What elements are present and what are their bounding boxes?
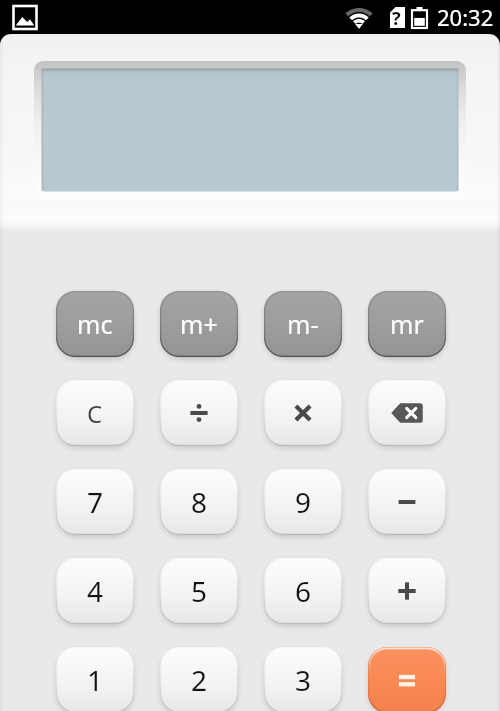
staticText: mr — [390, 307, 424, 341]
button[interactable]: Equals — [368, 647, 446, 711]
staticText: mc — [77, 307, 113, 341]
button[interactable]: 9 — [264, 469, 342, 535]
button[interactable]: Backspace — [368, 380, 446, 446]
button[interactable]: m- — [264, 291, 342, 357]
button[interactable]: 4 — [56, 558, 134, 624]
button[interactable]: Plus — [368, 558, 446, 624]
button[interactable]: C — [56, 380, 134, 446]
button[interactable]: Minus — [368, 469, 446, 535]
staticText: 8 — [191, 483, 208, 521]
staticText: 4 — [87, 572, 104, 610]
staticText: ? — [392, 6, 401, 31]
staticText: 1 — [87, 661, 104, 699]
button[interactable]: 8 — [160, 469, 238, 535]
staticText: 6 — [295, 572, 312, 610]
button[interactable]: 5 — [160, 558, 238, 624]
button[interactable]: mr — [368, 291, 446, 357]
button[interactable]: 3 — [264, 647, 342, 711]
button[interactable]: Multiply — [264, 380, 342, 446]
staticText: 3 — [295, 661, 312, 699]
staticText: m- — [287, 307, 319, 341]
button[interactable]: 2 — [160, 647, 238, 711]
button[interactable]: 7 — [56, 469, 134, 535]
staticText: 7 — [87, 483, 104, 521]
staticText: 20:32 — [437, 2, 494, 32]
button[interactable]: mc — [56, 291, 134, 357]
staticText: 2 — [191, 661, 208, 699]
staticText: 9 — [295, 483, 312, 521]
button[interactable]: 6 — [264, 558, 342, 624]
staticText: 5 — [191, 572, 208, 610]
staticText: m+ — [180, 307, 218, 341]
button[interactable]: Divide — [160, 380, 238, 446]
button[interactable]: 1 — [56, 647, 134, 711]
button[interactable]: m+ — [160, 291, 238, 357]
staticText: C — [87, 397, 103, 430]
